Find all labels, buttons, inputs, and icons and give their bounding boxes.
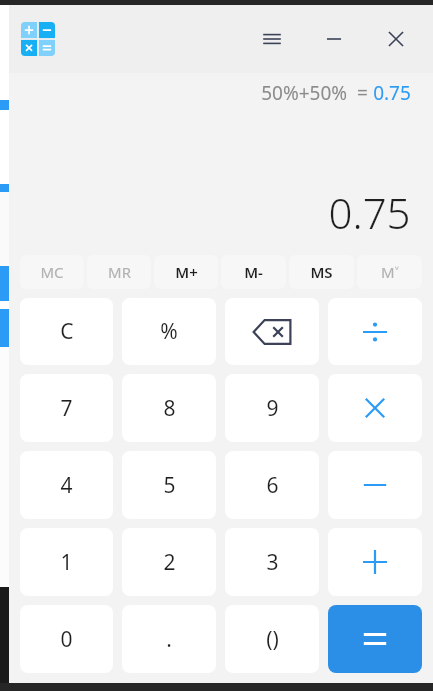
button[interactable]: () (225, 605, 319, 673)
staticText: M+ (175, 262, 198, 282)
button[interactable]: 2 (122, 528, 216, 596)
button[interactable]: Divide (328, 298, 422, 365)
staticText: 0.75 (328, 184, 411, 241)
button[interactable]: MC (20, 255, 84, 289)
button[interactable]: Backspace (225, 298, 319, 365)
button[interactable]: M+ (154, 255, 218, 289)
button[interactable]: 8 (122, 374, 216, 442)
button[interactable]: 3 (225, 528, 319, 596)
button[interactable]: 0 (20, 605, 113, 673)
button[interactable]: Equals (328, 605, 422, 673)
staticText: 3 (266, 548, 279, 577)
staticText: MS (310, 262, 333, 282)
staticText: 9 (266, 394, 279, 423)
button[interactable]: Minimize (303, 8, 365, 70)
button[interactable]: 4 (20, 451, 113, 519)
button[interactable]: % (122, 298, 216, 365)
staticText: 2 (163, 548, 176, 577)
button[interactable]: Subtract (328, 451, 422, 519)
button[interactable]: 1 (20, 528, 113, 596)
staticText: M˅ (381, 262, 399, 282)
staticText: 6 (266, 471, 279, 500)
button[interactable]: Add (328, 528, 422, 596)
staticText: 8 (163, 394, 176, 423)
button[interactable]: M- (221, 255, 286, 289)
button[interactable]: Close (365, 8, 427, 70)
button[interactable]: M˅ (357, 255, 422, 289)
button[interactable]: . (122, 605, 216, 673)
button[interactable]: 7 (20, 374, 113, 442)
staticText: () (266, 625, 279, 654)
button[interactable]: 6 (225, 451, 319, 519)
staticText: 4 (60, 471, 73, 500)
button[interactable]: Multiply (328, 374, 422, 442)
button[interactable]: 9 (225, 374, 319, 442)
staticText: 50%+50% = (256, 80, 373, 106)
button[interactable]: C (20, 298, 113, 365)
button[interactable]: MR (87, 255, 151, 289)
staticText: 1 (60, 548, 73, 577)
staticText: % (160, 317, 178, 346)
button[interactable]: Menu (241, 8, 303, 70)
staticText: 0.75 (373, 80, 411, 106)
staticText: 7 (60, 394, 73, 423)
staticText: . (166, 625, 172, 654)
button[interactable]: 5 (122, 451, 216, 519)
staticText: MC (40, 262, 64, 282)
staticText: M- (244, 262, 263, 282)
staticText: 0 (60, 625, 73, 654)
staticText: MR (108, 262, 131, 282)
staticText: 5 (163, 471, 176, 500)
button[interactable]: MS (289, 255, 354, 289)
staticText: C (60, 317, 74, 346)
